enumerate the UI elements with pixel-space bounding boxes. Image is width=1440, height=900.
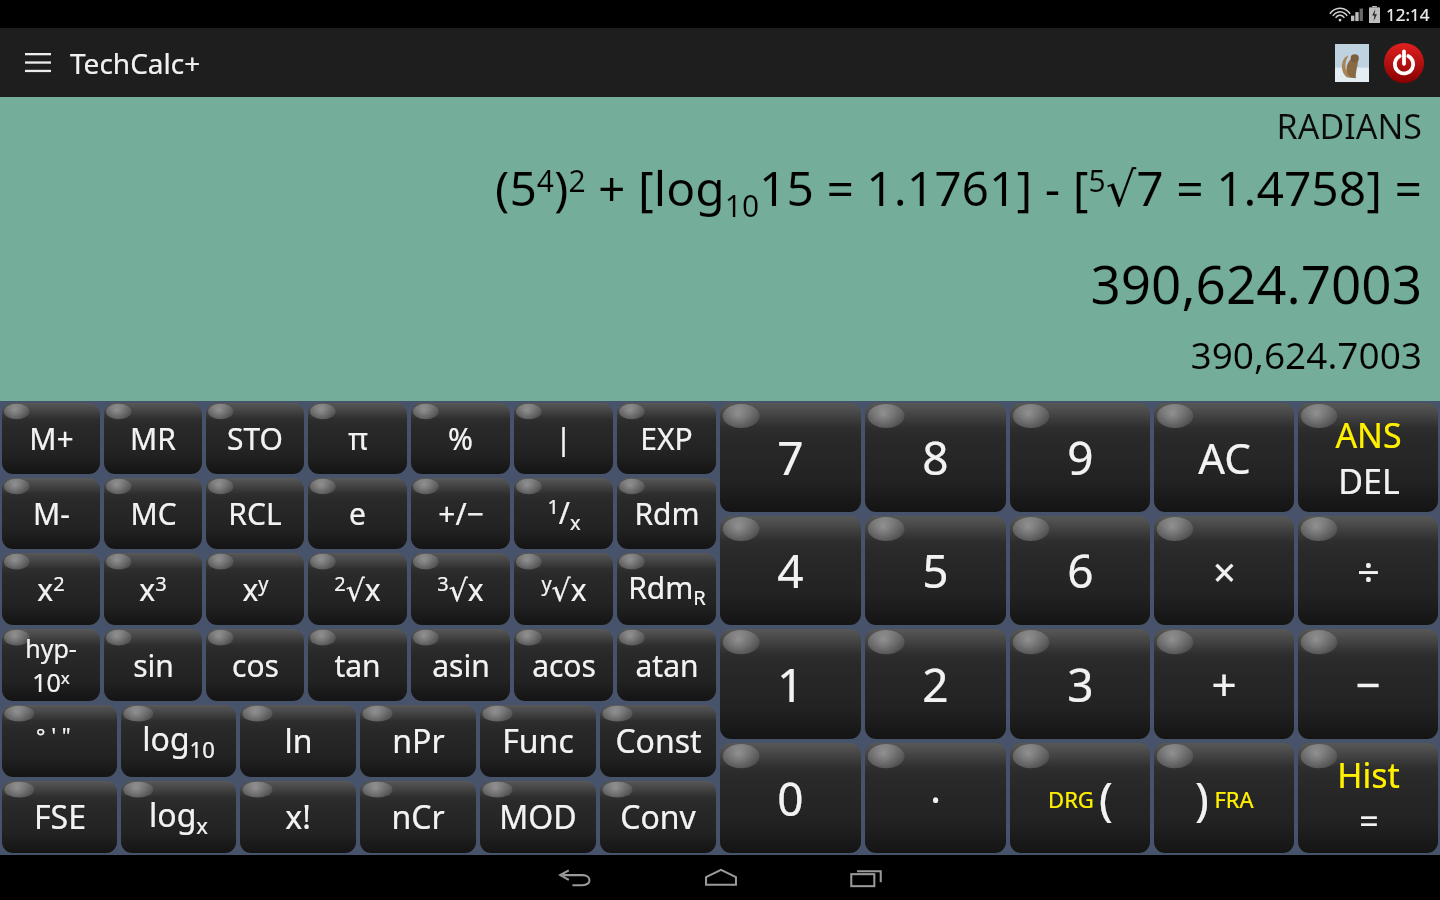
button[interactable]: logx [121, 781, 236, 853]
button[interactable]: e [308, 478, 407, 549]
staticText: Const [615, 719, 702, 763]
button[interactable]: x2 [2, 553, 100, 625]
staticText: RdmR [628, 567, 706, 611]
button[interactable]: xy [206, 553, 304, 625]
button[interactable]: cos [206, 629, 304, 701]
button[interactable]: 9 [1010, 403, 1150, 512]
button[interactable]: 1 [720, 629, 861, 739]
button[interactable]: MC [104, 478, 202, 549]
staticText: 390,624.7003 [16, 329, 1422, 379]
button[interactable]: STO [206, 403, 304, 474]
button[interactable]: ) [1154, 743, 1294, 853]
staticText: 3 [1067, 653, 1094, 716]
button[interactable]: ÷ [1298, 516, 1438, 625]
button[interactable]: 3√x [411, 553, 510, 625]
button[interactable]: % [411, 403, 510, 474]
button[interactable]: RdmR [617, 553, 716, 625]
button[interactable]: RADIANS [0, 97, 1440, 401]
staticText: 2√x [334, 569, 381, 610]
button[interactable]: AC [1154, 403, 1294, 512]
button[interactable]: Recent apps [793, 855, 938, 900]
button[interactable]: log10 [121, 705, 236, 777]
button[interactable]: ANS [1298, 403, 1438, 512]
button[interactable]: hyp- [2, 629, 100, 701]
staticText: STO [227, 418, 283, 459]
staticText: ° ' " [36, 720, 71, 750]
staticText: hyp- [25, 631, 77, 665]
button[interactable]: tan [308, 629, 407, 701]
staticText: M+ [29, 418, 74, 459]
button[interactable]: x! [240, 781, 356, 853]
staticText: 0 [777, 767, 804, 830]
button[interactable]: y√x [514, 553, 613, 625]
button[interactable]: asin [411, 629, 510, 701]
button[interactable]: + [1154, 629, 1294, 739]
staticText: | [555, 418, 572, 459]
button[interactable]: M- [2, 478, 100, 549]
button[interactable]: 4 [720, 516, 861, 625]
staticText: = [1359, 798, 1379, 844]
button[interactable]: sin [104, 629, 202, 701]
button[interactable]: 1/x [514, 478, 613, 549]
button[interactable]: FSE [2, 781, 117, 853]
button[interactable]: RCL [206, 478, 304, 549]
button[interactable]: Const [600, 705, 716, 777]
button[interactable]: Func [480, 705, 596, 777]
button[interactable]: 7 [720, 403, 861, 512]
button[interactable]: MR [104, 403, 202, 474]
button[interactable]: 2√x [308, 553, 407, 625]
button[interactable]: Photo [1332, 42, 1372, 84]
staticText: π [348, 418, 368, 459]
staticText: tan [334, 645, 381, 686]
button[interactable]: 8 [865, 403, 1006, 512]
staticText: 1 [777, 653, 804, 716]
staticText: x3 [139, 569, 167, 610]
button[interactable]: ° ' " [2, 705, 117, 777]
staticText: 3√x [437, 569, 484, 610]
button[interactable]: +/− [411, 478, 510, 549]
button[interactable]: × [1154, 516, 1294, 625]
button[interactable]: EXP [617, 403, 716, 474]
button[interactable]: | [514, 403, 613, 474]
button[interactable]: MOD [480, 781, 596, 853]
staticText: log10 [142, 717, 215, 765]
button[interactable]: 6 [1010, 516, 1150, 625]
staticText: x2 [37, 569, 65, 610]
button[interactable]: π [308, 403, 407, 474]
button[interactable]: Rdm [617, 478, 716, 549]
button[interactable]: − [1298, 629, 1438, 739]
staticText: MOD [499, 795, 577, 839]
button[interactable]: 0 [720, 743, 861, 853]
button[interactable]: nCr [360, 781, 476, 853]
staticText: ÷ [1357, 544, 1380, 598]
staticText: MC [130, 493, 177, 534]
staticText: Conv [620, 795, 696, 839]
button[interactable]: Open navigation menu [20, 45, 56, 81]
button[interactable]: 2 [865, 629, 1006, 739]
button[interactable]: DRG [1010, 743, 1150, 853]
staticText: nCr [391, 795, 445, 839]
staticText: M- [33, 493, 70, 534]
staticText: AC [1198, 429, 1251, 486]
staticText: cos [232, 645, 279, 686]
button[interactable]: M+ [2, 403, 100, 474]
button[interactable]: nPr [360, 705, 476, 777]
staticText: × [1213, 544, 1236, 598]
button[interactable]: Home [648, 855, 793, 900]
button[interactable]: Back [503, 855, 648, 900]
button[interactable]: acos [514, 629, 613, 701]
button[interactable]: atan [617, 629, 716, 701]
button[interactable]: x3 [104, 553, 202, 625]
staticText: nPr [392, 719, 445, 763]
button[interactable]: · [865, 743, 1006, 853]
staticText: 9 [1067, 426, 1094, 489]
staticText: ) [1195, 767, 1209, 830]
button[interactable]: Hist [1298, 743, 1438, 853]
button[interactable]: Conv [600, 781, 716, 853]
button[interactable]: Exit [1382, 41, 1426, 85]
button[interactable]: ln [240, 705, 356, 777]
button[interactable]: 5 [865, 516, 1006, 625]
button[interactable]: 3 [1010, 629, 1150, 739]
staticText: 12:14 [1386, 3, 1430, 26]
staticText: 1/x [547, 492, 581, 536]
